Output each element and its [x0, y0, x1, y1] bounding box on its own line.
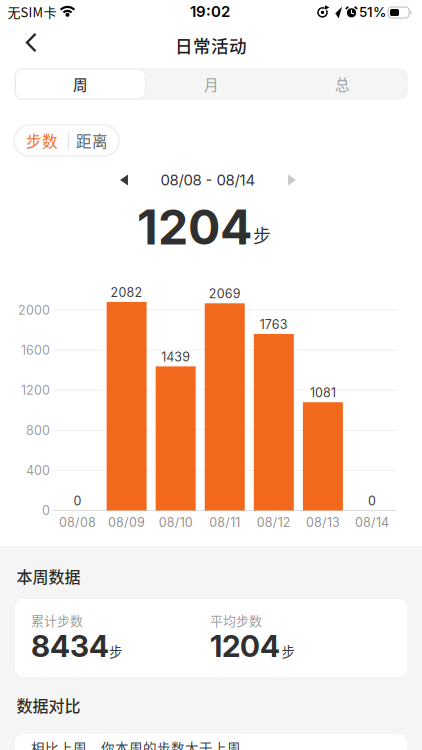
staticText: 08/14: [355, 515, 389, 530]
staticText: 距离: [76, 129, 108, 152]
staticText: 步: [281, 641, 295, 661]
staticText: 800: [26, 423, 50, 438]
staticText: 日常活动: [175, 32, 247, 58]
staticText: 08/09: [108, 515, 145, 530]
staticText: 无SIM卡: [7, 2, 56, 21]
staticText: 相比上周，你本周的步数大于上周: [31, 738, 241, 750]
button[interactable]: [278, 170, 306, 190]
staticText: 08/12: [257, 515, 291, 530]
button[interactable]: [110, 170, 138, 190]
staticText: 周: [73, 73, 88, 94]
staticText: 0: [42, 503, 50, 518]
staticText: 累计步数: [31, 611, 83, 629]
staticText: 51%: [359, 4, 386, 20]
staticText: 1200: [21, 383, 50, 398]
button[interactable]: 总: [277, 68, 407, 100]
button[interactable]: 距离: [66, 125, 118, 156]
button[interactable]: [6, 28, 50, 56]
staticText: 2069: [209, 286, 241, 301]
staticText: 2000: [18, 303, 50, 318]
staticText: 1204: [210, 628, 280, 664]
staticText: 数据对比: [16, 693, 80, 717]
staticText: 8434: [31, 628, 109, 664]
staticText: 步: [253, 222, 271, 248]
staticText: 1081: [310, 385, 336, 400]
staticText: 08/13: [306, 515, 340, 530]
staticText: 0: [73, 493, 81, 508]
staticText: 平均步数: [210, 611, 262, 629]
staticText: 1204: [137, 198, 252, 256]
staticText: 1439: [161, 349, 190, 364]
staticText: 步: [109, 641, 123, 661]
staticText: 08/08 - 08/14: [160, 171, 255, 189]
staticText: 步数: [26, 129, 58, 152]
staticText: 1600: [21, 343, 50, 358]
button[interactable]: 月: [146, 68, 276, 100]
staticText: 1763: [260, 317, 288, 332]
staticText: 总: [335, 73, 350, 94]
staticText: 2082: [111, 285, 143, 300]
staticText: 08/08: [59, 515, 96, 530]
staticText: 月: [204, 73, 219, 94]
button[interactable]: 周: [15, 68, 146, 100]
staticText: 本周数据: [16, 564, 80, 588]
button[interactable]: 步数: [15, 125, 69, 156]
staticText: 400: [26, 463, 50, 478]
staticText: 08/11: [209, 515, 240, 530]
staticText: 0: [368, 493, 376, 508]
staticText: 19:02: [190, 2, 230, 20]
staticText: 08/10: [159, 515, 193, 530]
